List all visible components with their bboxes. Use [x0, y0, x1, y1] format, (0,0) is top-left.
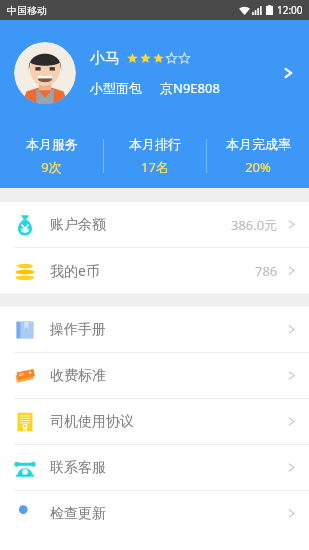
button[interactable]: 小马 — [0, 20, 309, 188]
staticText: 本月完成率 — [226, 136, 291, 152]
staticText: 12:00 — [277, 3, 303, 17]
staticText: 检查更新 — [50, 505, 106, 523]
staticText: 收费标准 — [50, 367, 106, 385]
staticText: 786 — [255, 262, 278, 280]
staticText: 我的e币 — [50, 261, 100, 280]
button[interactable]: 本月完成率 — [207, 136, 309, 176]
button[interactable]: 账户余额 — [0, 202, 309, 247]
button[interactable]: 我的e币 — [0, 248, 309, 293]
button[interactable]: 检查更新 — [0, 491, 309, 536]
staticText: 操作手册 — [50, 321, 106, 339]
button[interactable]: 联系客服 — [0, 445, 309, 490]
staticText: 17名 — [141, 158, 169, 176]
staticText: 联系客服 — [50, 459, 106, 477]
staticText: 中国移动 — [7, 4, 47, 17]
other: Profile details — [281, 66, 295, 80]
button[interactable]: 本月排行 — [104, 136, 206, 176]
staticText: 账户余额 — [50, 216, 106, 234]
staticText: 司机使用协议 — [50, 413, 134, 431]
staticText: 小型面包 — [90, 80, 142, 96]
button[interactable]: 司机使用协议 — [0, 399, 309, 444]
button[interactable]: 操作手册 — [0, 307, 309, 352]
staticText: 386.0元 — [231, 216, 278, 234]
staticText: 20% — [245, 158, 271, 176]
button[interactable]: 本月服务 — [0, 136, 103, 176]
staticText: 本月服务 — [26, 136, 78, 152]
staticText: 京N9E808 — [160, 79, 220, 97]
staticText: 小马 — [90, 49, 120, 68]
staticText: 本月排行 — [129, 136, 181, 152]
staticText: 9次 — [41, 158, 62, 176]
button[interactable]: 收费标准 — [0, 353, 309, 398]
